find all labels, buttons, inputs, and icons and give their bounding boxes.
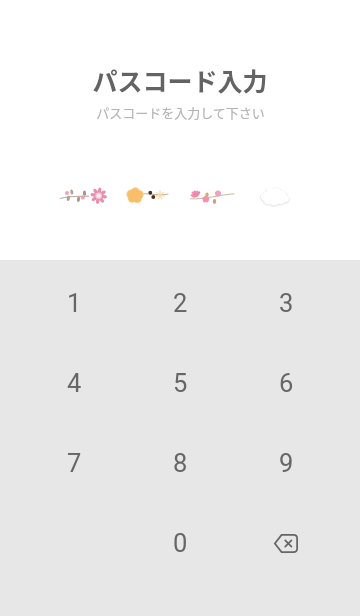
button[interactable]: 8 <box>127 423 233 503</box>
staticText: 2 <box>173 288 188 318</box>
button[interactable]: 5 <box>127 343 233 423</box>
button[interactable]: Delete <box>233 503 339 583</box>
staticText: パスコードを入力して下さい <box>96 103 265 122</box>
staticText: 5 <box>173 368 188 398</box>
button[interactable]: 9 <box>233 423 339 503</box>
button[interactable]: 0 <box>127 503 233 583</box>
staticText: 3 <box>279 288 294 318</box>
staticText: 4 <box>67 368 82 398</box>
button[interactable]: 4 <box>21 343 127 423</box>
button[interactable]: 6 <box>233 343 339 423</box>
staticText: 6 <box>279 368 294 398</box>
button[interactable]: 2 <box>127 263 233 343</box>
staticText: 0 <box>173 528 188 558</box>
button[interactable]: 1 <box>21 263 127 343</box>
staticText: 1 <box>67 288 82 318</box>
staticText: パスコード入力 <box>92 62 268 98</box>
button[interactable]: 7 <box>21 423 127 503</box>
staticText: 8 <box>173 448 188 478</box>
other: Passcode entered: 3 of 4 digits <box>0 0 360 616</box>
staticText: 9 <box>279 448 294 478</box>
staticText: 7 <box>67 448 82 478</box>
button[interactable]: 3 <box>233 263 339 343</box>
